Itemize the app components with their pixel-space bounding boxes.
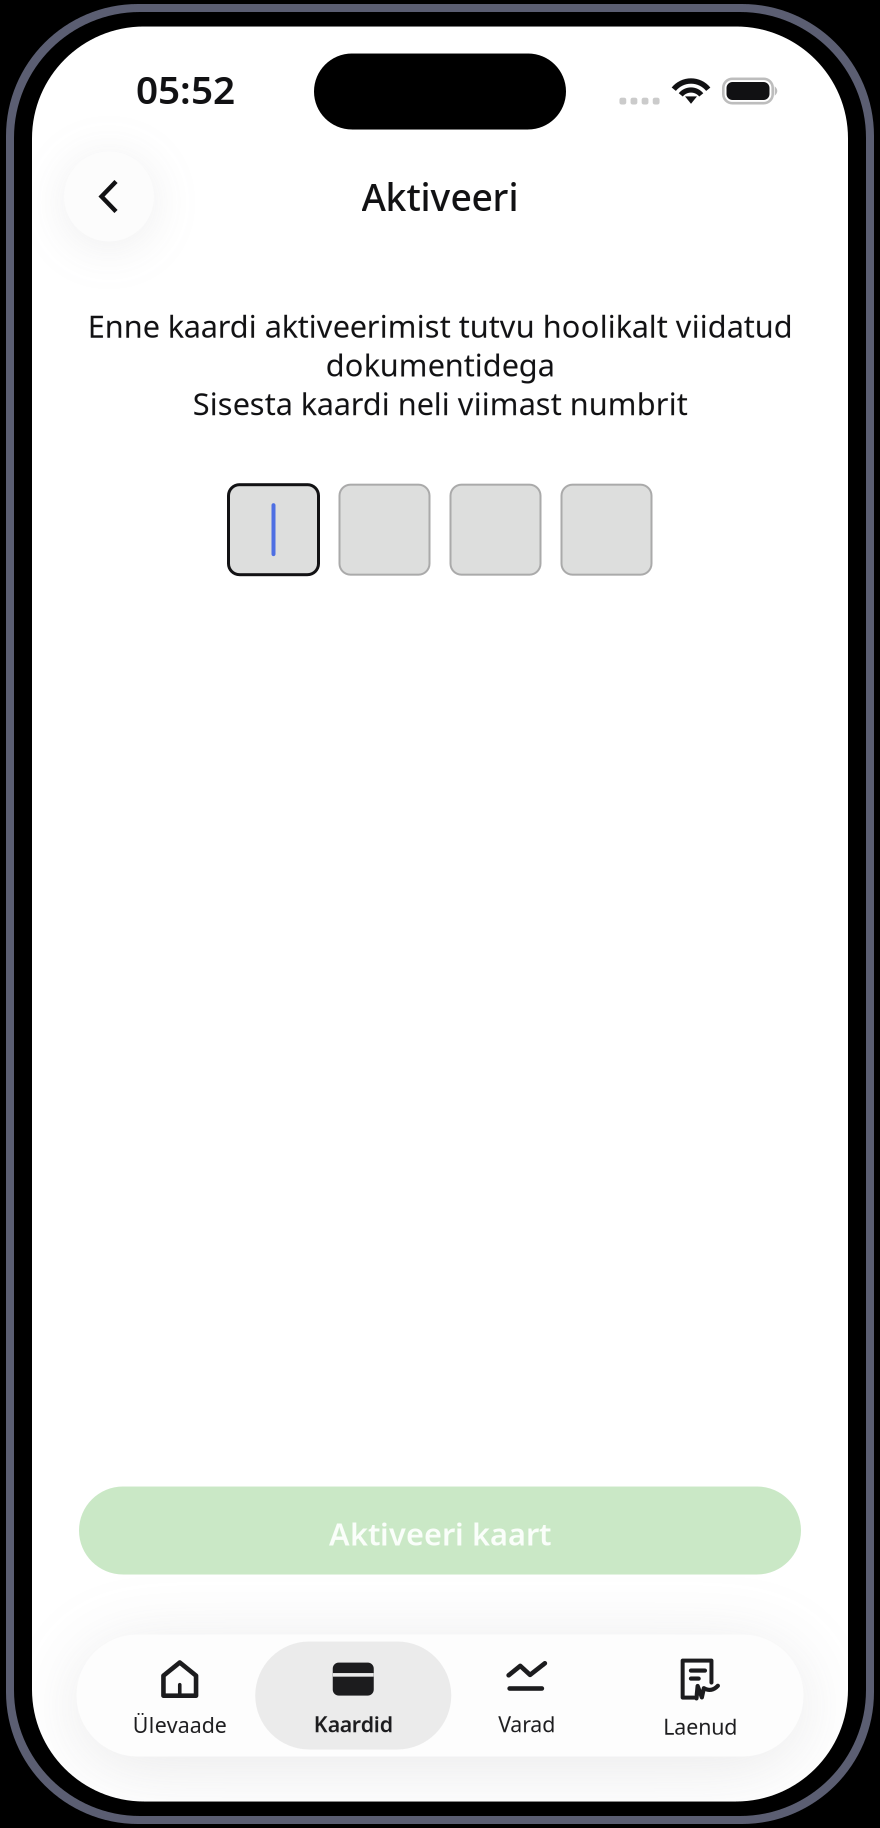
button[interactable]: Varad: [440, 1634, 613, 1756]
button[interactable]: Ülevaade: [93, 1634, 266, 1756]
staticText: Aktiveeri: [361, 172, 518, 221]
button[interactable]: Aktiveeri kaart: [79, 1486, 801, 1574]
staticText: 05:52: [136, 63, 235, 115]
staticText: Enne kaardi aktiveerimist tutvu hoolikal…: [87, 305, 792, 424]
staticText: Kaardid: [314, 1710, 393, 1738]
staticText: Varad: [498, 1710, 555, 1738]
staticText: Aktiveeri kaart: [329, 1513, 551, 1554]
button[interactable]: Laenud: [613, 1634, 787, 1756]
button[interactable]: Back: [64, 151, 154, 241]
staticText: Ülevaade: [133, 1711, 227, 1739]
button[interactable]: Kaardid: [266, 1634, 440, 1756]
staticText: Laenud: [663, 1712, 737, 1741]
